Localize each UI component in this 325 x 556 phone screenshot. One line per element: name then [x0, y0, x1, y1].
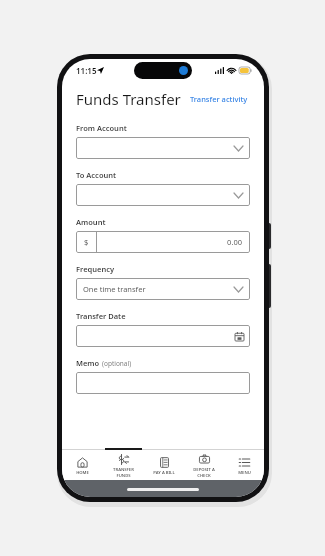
- button[interactable]: Transfer activity: [188, 92, 250, 106]
- button[interactable]: TRANSFER FUNDS: [103, 451, 144, 479]
- other: Pick date: [235, 332, 244, 341]
- staticText: Transfer Date: [76, 311, 126, 321]
- staticText: CHECK: [197, 473, 211, 479]
- staticText: To Account: [76, 170, 117, 180]
- button[interactable]: PAY A BILL: [144, 454, 184, 476]
- staticText: Frequency: [76, 264, 115, 274]
- button[interactable]: HOME: [62, 454, 103, 476]
- staticText: 0.00: [227, 237, 242, 247]
- staticText: Transfer activity: [190, 94, 248, 104]
- button[interactable]: One time transfer: [76, 278, 250, 300]
- button[interactable]: Pick date: [76, 325, 250, 347]
- staticText: FUNDS: [116, 473, 131, 479]
- staticText: Amount: [76, 217, 106, 227]
- staticText: 11:15: [76, 65, 97, 76]
- staticText: TRANSFER: [113, 467, 134, 473]
- staticText: $: [84, 237, 89, 247]
- button[interactable]: MENU: [224, 454, 264, 476]
- staticText: From Account: [76, 123, 127, 133]
- button[interactable]: DEPOSIT A CHECK: [184, 451, 224, 479]
- button[interactable]: $: [76, 231, 250, 253]
- staticText: DEPOSIT A: [193, 467, 215, 473]
- staticText: HOME: [76, 470, 89, 476]
- button[interactable]: [76, 184, 250, 206]
- staticText: MENU: [238, 470, 251, 476]
- button[interactable]: [76, 137, 250, 159]
- staticText: Funds Transfer: [76, 89, 181, 109]
- staticText: Memo: [76, 358, 102, 368]
- staticText: (optional): [102, 359, 132, 368]
- staticText: One time transfer: [83, 284, 146, 294]
- staticText: PAY A BILL: [153, 470, 175, 476]
- button[interactable]: [76, 372, 250, 394]
